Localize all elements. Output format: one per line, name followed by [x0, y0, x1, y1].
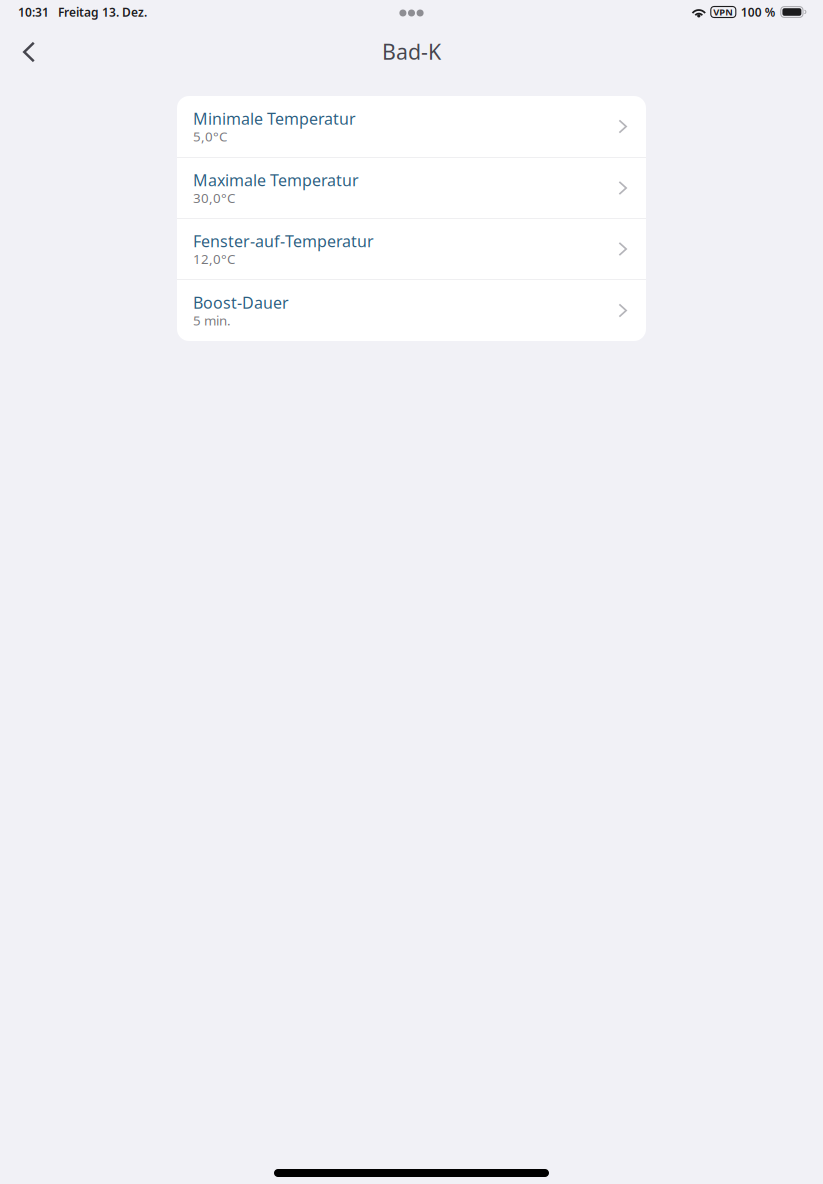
staticText: Minimale Temperatur [193, 110, 356, 128]
staticText: Maximale Temperatur [193, 171, 359, 189]
button[interactable]: Back [0, 27, 49, 68]
staticText: VPN [713, 6, 733, 18]
staticText: Freitag 13. Dez. [58, 4, 147, 20]
staticText: 100 % [741, 4, 776, 20]
staticText: 5,0°C [193, 128, 227, 145]
staticText: Bad-K [382, 37, 441, 66]
button[interactable]: Boost-Dauer [177, 280, 646, 341]
staticText: 30,0°C [193, 189, 235, 207]
staticText: 10:31 [18, 4, 49, 20]
staticText: Fenster-auf-Temperatur [193, 232, 374, 250]
button[interactable]: Maximale Temperatur [177, 158, 646, 219]
button[interactable]: Fenster-auf-Temperatur [177, 219, 646, 280]
button[interactable]: Minimale Temperatur [177, 96, 646, 158]
staticText: 12,0°C [193, 250, 235, 268]
staticText: Boost-Dauer [193, 294, 289, 312]
staticText: 5 min. [193, 312, 231, 329]
